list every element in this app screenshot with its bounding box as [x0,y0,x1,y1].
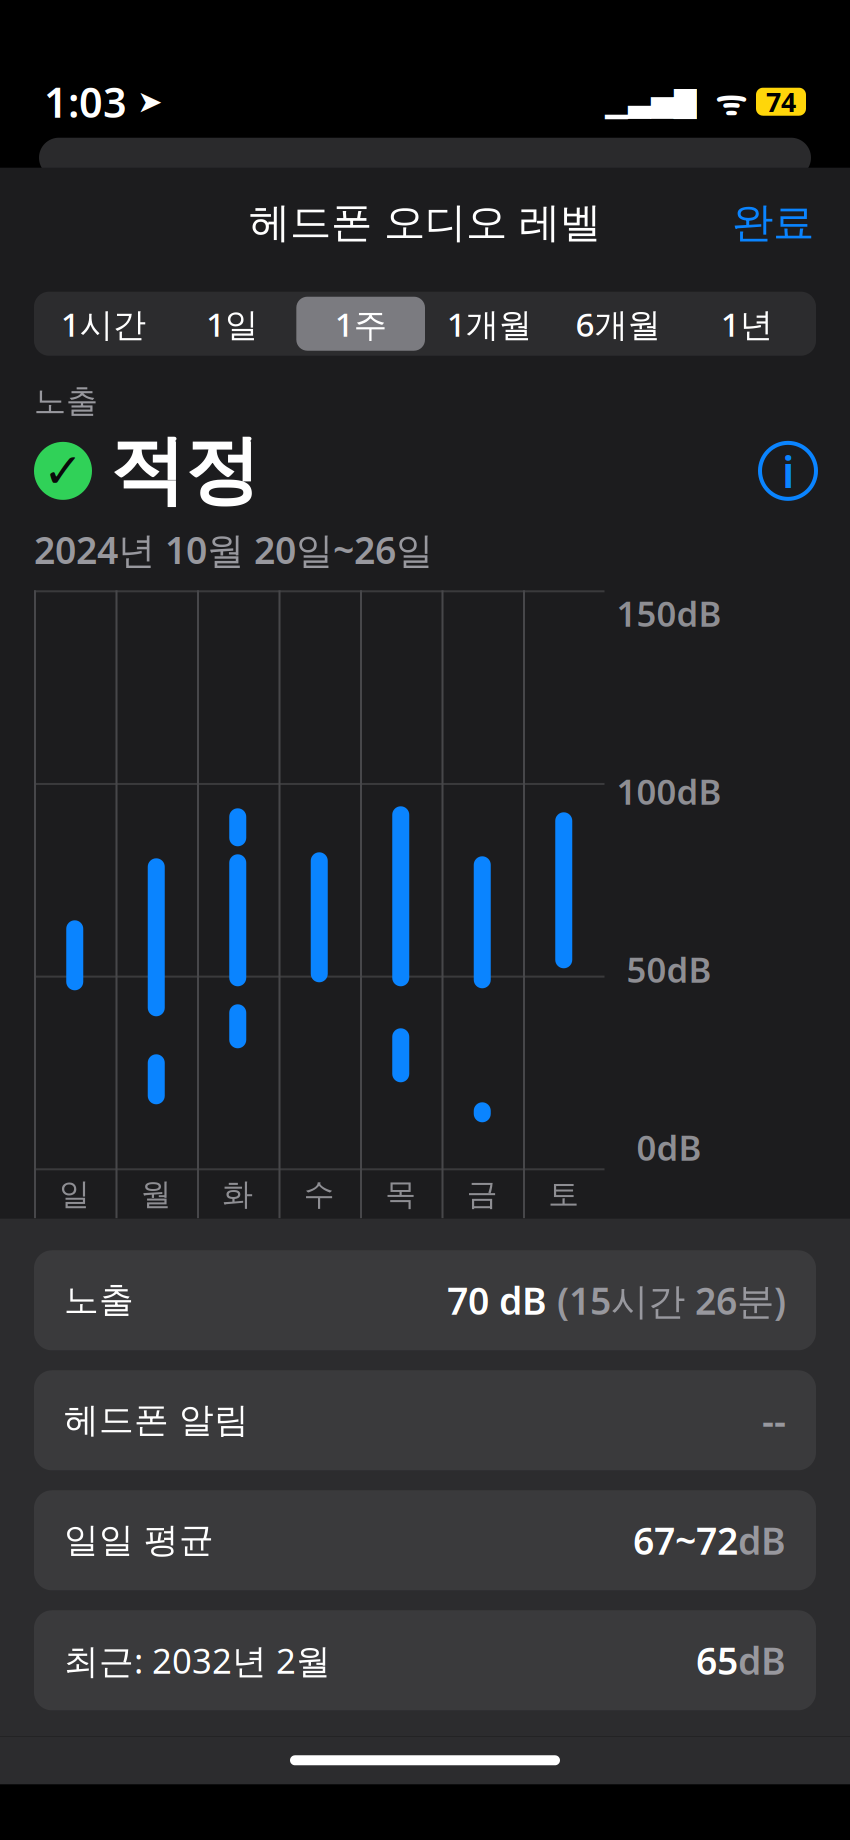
staticText: ▁▃▅▇ [605,85,697,118]
staticText: 1시간 [61,302,146,346]
staticText: 67~72 [633,1515,738,1565]
staticText: 50dB [626,946,711,992]
button[interactable]: 1일 [168,297,296,351]
staticText: 6개월 [575,302,660,346]
staticText: 1년 [721,302,773,346]
staticText: dB [738,1515,786,1565]
staticText: 70 dB [447,1275,557,1325]
staticText: 헤드폰 오디오 레벨 [249,197,601,248]
staticText: 1주 [335,302,387,346]
staticText: 최근: 2032년 2월 [64,1637,331,1683]
button[interactable]: 일일 평균 [34,1490,816,1590]
staticText: 금 [467,1175,498,1213]
staticText: 100dB [616,768,721,814]
staticText: 노출 [64,1279,134,1322]
staticText: 월 [141,1175,172,1213]
staticText: 74 [766,84,796,119]
staticText: ᯤ [697,79,756,125]
staticText: 적정 [110,425,260,517]
button[interactable]: 1년 [682,297,811,351]
staticText: ➤ [127,84,163,119]
staticText: 1개월 [447,302,532,346]
staticText: 1일 [206,302,258,346]
staticText: dB [738,1635,786,1685]
staticText: 수 [304,1175,335,1213]
staticText: 일일 평균 [64,1519,214,1562]
staticText: 150dB [616,590,721,636]
button[interactable]: 완료 [732,197,814,248]
button[interactable]: 최근: 2032년 2월 [34,1610,816,1710]
staticText: 2024년 10월 20일~26일 [34,525,433,574]
button[interactable]: 6개월 [554,297,682,351]
button[interactable]: 노출 [34,1250,816,1350]
staticText: 화 [222,1175,253,1213]
staticText: 일 [59,1175,90,1213]
staticText: 1:03 [44,74,127,129]
staticText: -- [762,1395,786,1445]
staticText: i [782,442,794,500]
staticText: ✓ [43,444,83,498]
staticText: 토 [548,1175,579,1213]
staticText: 65 [696,1635,738,1685]
button[interactable]: 1개월 [425,297,554,351]
staticText: (15시간 26분) [557,1275,786,1325]
button[interactable]: 헤드폰 알림 [34,1370,816,1470]
button[interactable]: 1시간 [39,297,168,351]
staticText: 0dB [636,1124,701,1170]
button[interactable]: 정보 [760,442,816,500]
staticText: 완료 [732,197,814,248]
button[interactable]: 1주 [296,297,425,351]
staticText: 목 [385,1175,416,1213]
staticText: 헤드폰 알림 [64,1399,249,1442]
staticText: 노출 [34,382,98,421]
